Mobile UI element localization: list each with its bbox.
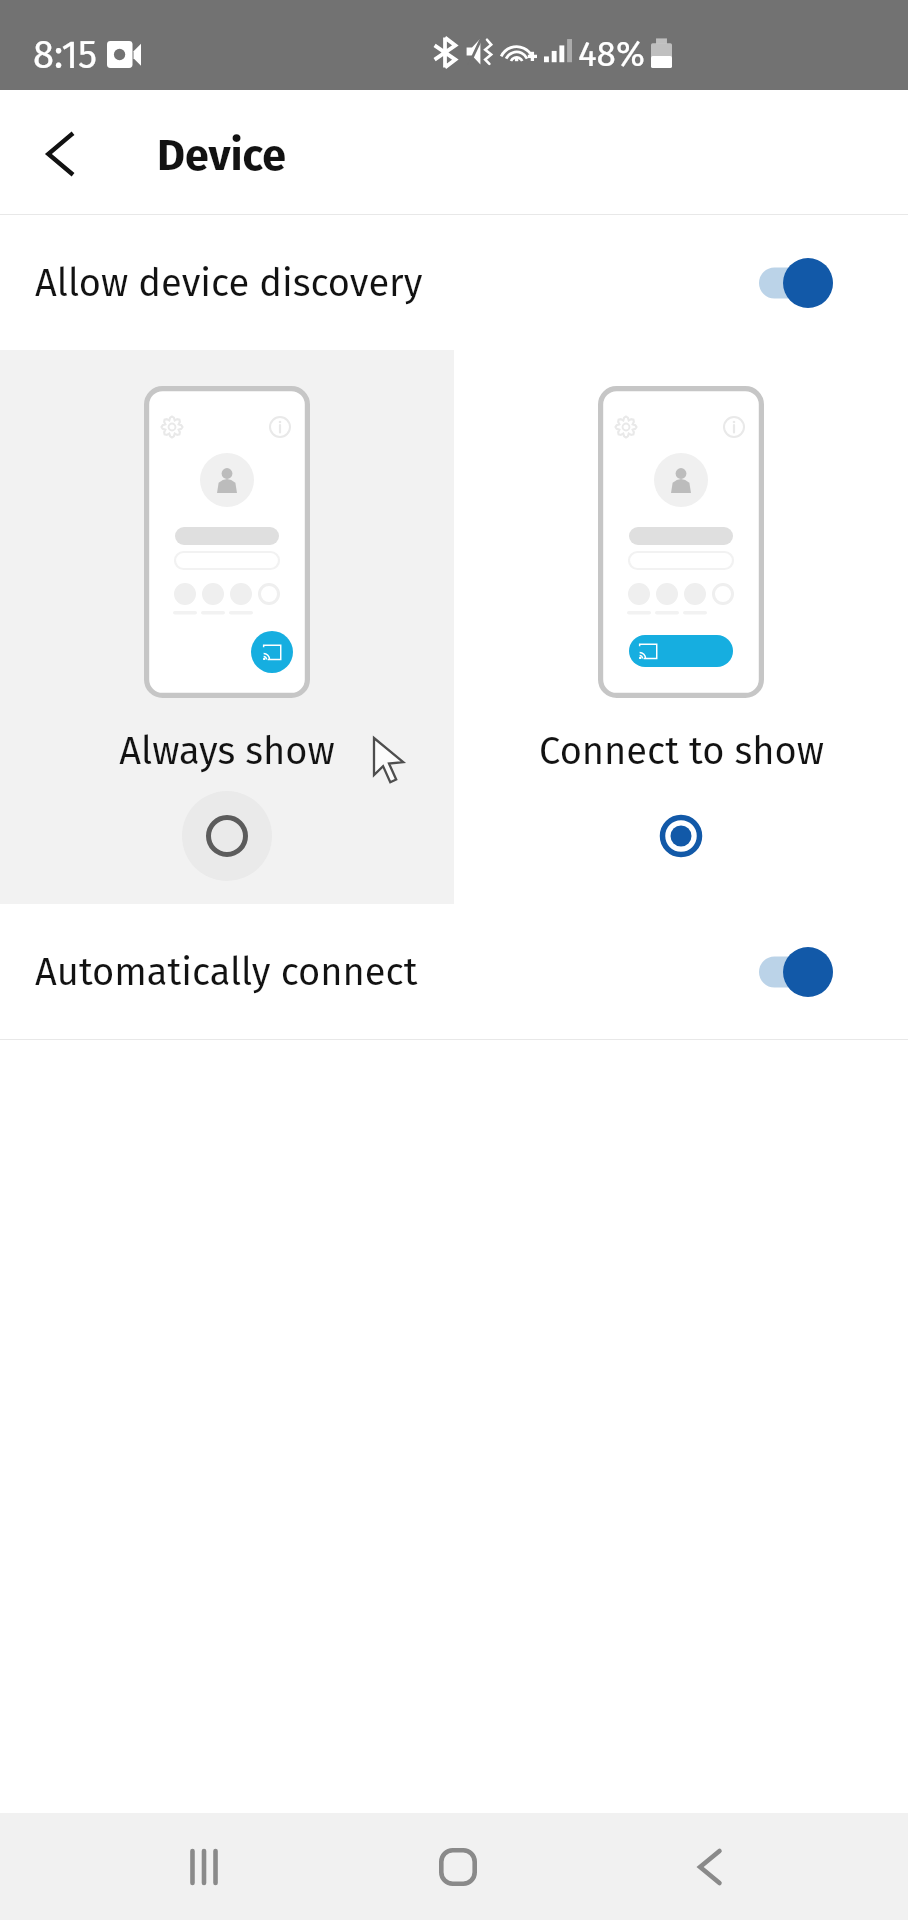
button[interactable]: Always show (0, 350, 454, 904)
button[interactable]: Toggle (759, 258, 833, 308)
button[interactable]: Automatically connect (0, 904, 908, 1039)
staticText: 48% (578, 33, 645, 75)
staticText: Connect to show (539, 728, 824, 774)
staticText: Device (157, 130, 287, 182)
button[interactable]: Allow device discovery (0, 215, 908, 350)
button[interactable]: Connect to show (454, 350, 908, 904)
button[interactable]: Recent apps (150, 1813, 258, 1920)
staticText: Allow device discovery (35, 260, 759, 306)
button[interactable]: Back (658, 1813, 766, 1920)
button[interactable]: Select (633, 788, 729, 884)
staticText: Automatically connect (35, 949, 759, 995)
staticText: Always show (119, 728, 335, 774)
staticText: 8:15 (33, 32, 98, 78)
button[interactable]: Select (179, 788, 275, 884)
button[interactable]: Back (22, 112, 106, 196)
button[interactable]: Toggle (759, 947, 833, 997)
button[interactable]: Home (404, 1813, 512, 1920)
